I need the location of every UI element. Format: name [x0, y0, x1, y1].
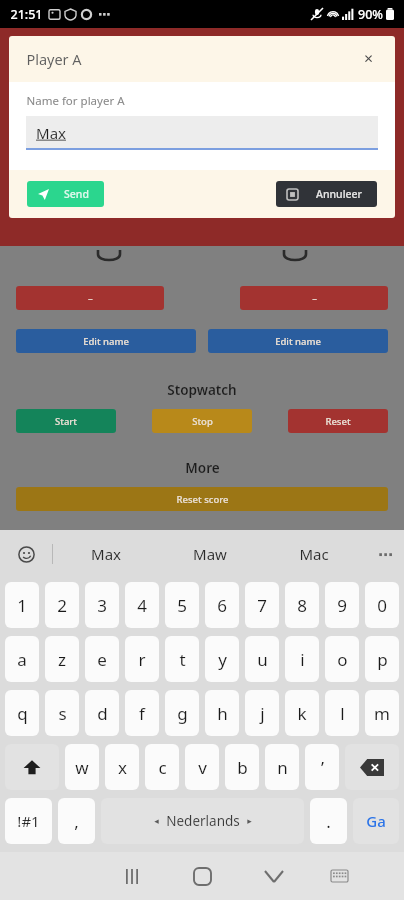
button[interactable]: ,	[58, 798, 95, 844]
button[interactable]: e	[85, 636, 119, 682]
button[interactable]: Recents	[96, 852, 167, 900]
button[interactable]: Switch keyboard	[309, 852, 369, 900]
staticText: 90%	[358, 6, 383, 23]
button[interactable]: –	[240, 286, 388, 310]
button[interactable]: Close	[355, 46, 381, 72]
button[interactable]: p	[365, 636, 399, 682]
button[interactable]: Backspace	[345, 744, 399, 790]
staticText: o	[337, 648, 348, 671]
staticText: ⋯	[98, 7, 111, 22]
button[interactable]: d	[85, 690, 119, 736]
button[interactable]: w	[65, 744, 99, 790]
button[interactable]: Send	[27, 181, 104, 207]
button[interactable]: h	[205, 690, 239, 736]
staticText: s	[58, 702, 67, 725]
button[interactable]: k	[285, 690, 319, 736]
button[interactable]: m	[365, 690, 399, 736]
staticText: m	[374, 702, 390, 725]
button[interactable]: 6	[205, 582, 239, 628]
staticText: 5	[177, 594, 187, 617]
button[interactable]: 5	[165, 582, 199, 628]
staticText: 2	[57, 594, 67, 617]
button[interactable]: l	[325, 690, 359, 736]
staticText: 9	[337, 594, 347, 617]
button[interactable]: i	[285, 636, 319, 682]
button[interactable]: ◂	[101, 798, 304, 844]
button[interactable]: 0	[365, 582, 399, 628]
button[interactable]: Edit name	[16, 329, 196, 353]
button[interactable]: y	[205, 636, 239, 682]
staticText: n	[277, 756, 288, 779]
staticText: ,	[74, 810, 79, 833]
button[interactable]: 1	[5, 582, 39, 628]
button[interactable]: x	[105, 744, 139, 790]
button[interactable]: z	[45, 636, 79, 682]
button[interactable]: v	[185, 744, 219, 790]
button[interactable]: u	[245, 636, 279, 682]
staticText: –	[312, 292, 317, 305]
button[interactable]: n	[265, 744, 299, 790]
button[interactable]: Stop	[152, 409, 252, 433]
button[interactable]: 3	[85, 582, 119, 628]
staticText: h	[217, 702, 228, 725]
button[interactable]: 2	[45, 582, 79, 628]
staticText: Edit name	[83, 335, 129, 348]
button[interactable]: b	[225, 744, 259, 790]
button[interactable]: 7	[245, 582, 279, 628]
button[interactable]: Max	[53, 530, 158, 578]
button[interactable]: j	[245, 690, 279, 736]
staticText: g	[177, 702, 188, 725]
staticText: f	[139, 702, 145, 725]
button[interactable]: Home	[167, 852, 238, 900]
staticText: t	[179, 648, 186, 671]
staticText: Nederlands	[166, 812, 240, 830]
button[interactable]: Reset	[288, 409, 388, 433]
button[interactable]: t	[165, 636, 199, 682]
staticText: p	[377, 648, 388, 671]
button[interactable]: r	[125, 636, 159, 682]
button[interactable]: !#1	[5, 798, 52, 844]
button[interactable]: c	[145, 744, 179, 790]
button[interactable]: 4	[125, 582, 159, 628]
button[interactable]: s	[45, 690, 79, 736]
button[interactable]: Maw	[158, 530, 262, 578]
staticText: Reset	[325, 415, 351, 428]
staticText: ✕	[363, 52, 374, 66]
staticText: l	[340, 702, 345, 725]
button[interactable]: More suggestions	[366, 530, 404, 578]
staticText: u	[257, 648, 268, 671]
button[interactable]: ’	[305, 744, 339, 790]
staticText: 1	[17, 594, 27, 617]
button[interactable]: Hide keyboard	[238, 852, 309, 900]
staticText: Annuleer	[316, 187, 362, 201]
button[interactable]: o	[325, 636, 359, 682]
button[interactable]: g	[165, 690, 199, 736]
button[interactable]: Ga	[353, 798, 399, 844]
button[interactable]: –	[16, 286, 164, 310]
staticText: 8	[297, 594, 307, 617]
button[interactable]: f	[125, 690, 159, 736]
staticText: Stop	[192, 415, 213, 428]
button[interactable]: Emoji	[0, 530, 52, 578]
button[interactable]: Mac	[262, 530, 366, 578]
staticText: Maw	[193, 544, 227, 564]
button[interactable]: 9	[325, 582, 359, 628]
staticText: 3	[97, 594, 107, 617]
button[interactable]: a	[5, 636, 39, 682]
button[interactable]: .	[310, 798, 347, 844]
staticText: ’	[321, 756, 324, 779]
staticText: d	[97, 702, 108, 725]
button[interactable]: Edit name	[208, 329, 388, 353]
staticText: Stopwatch	[167, 381, 237, 399]
button[interactable]: Annuleer	[276, 181, 377, 207]
staticText: i	[300, 648, 305, 671]
button[interactable]: q	[5, 690, 39, 736]
staticText: k	[297, 702, 307, 725]
staticText: ▸	[247, 816, 252, 826]
button[interactable]: Reset score	[16, 487, 388, 511]
staticText: Player A	[26, 49, 82, 69]
button[interactable]: Shift	[5, 744, 59, 790]
staticText: 7	[257, 594, 267, 617]
button[interactable]: Start	[16, 409, 116, 433]
button[interactable]: 8	[285, 582, 319, 628]
